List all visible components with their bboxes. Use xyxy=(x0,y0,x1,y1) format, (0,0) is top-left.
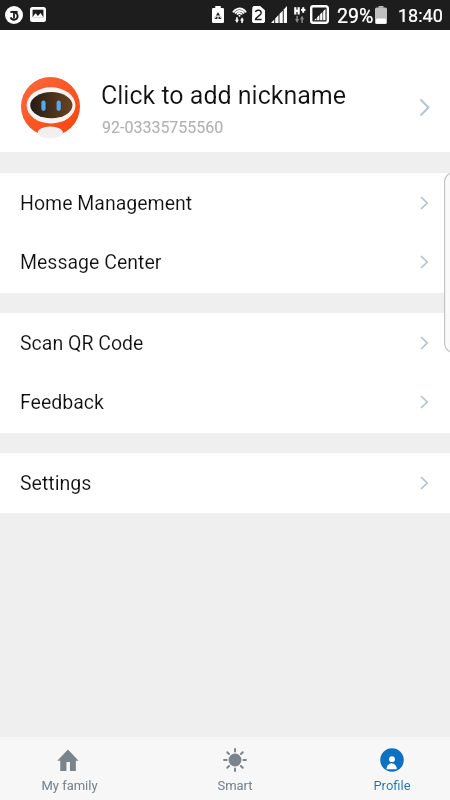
button[interactable]: Message Center xyxy=(0,232,450,292)
staticText: Home Management xyxy=(20,192,193,215)
staticText: Click to add nickname xyxy=(101,81,347,110)
other: Profile xyxy=(380,748,404,772)
staticText: 18:40 xyxy=(398,5,443,26)
button[interactable]: My family xyxy=(0,737,139,800)
staticText: Settings xyxy=(20,472,92,495)
staticText: 29% xyxy=(337,5,374,28)
staticText: Scan QR Code xyxy=(20,332,144,355)
button[interactable]: Profile xyxy=(322,737,450,800)
button[interactable]: Click to add nickname xyxy=(0,30,450,152)
other: My family xyxy=(56,748,80,772)
staticText: Smart xyxy=(217,778,253,793)
staticText: 92-03335755560 xyxy=(102,118,224,137)
button[interactable]: Smart xyxy=(165,737,305,800)
button[interactable]: Feedback xyxy=(0,372,450,432)
button[interactable]: Home Management xyxy=(0,173,450,233)
button[interactable]: Settings xyxy=(0,453,450,513)
button[interactable]: Scan QR Code xyxy=(0,313,450,373)
other: Smart xyxy=(223,748,247,772)
staticText: My family xyxy=(41,778,98,793)
staticText: Profile xyxy=(373,778,411,793)
staticText: Message Center xyxy=(20,251,162,274)
staticText: Feedback xyxy=(20,391,104,414)
